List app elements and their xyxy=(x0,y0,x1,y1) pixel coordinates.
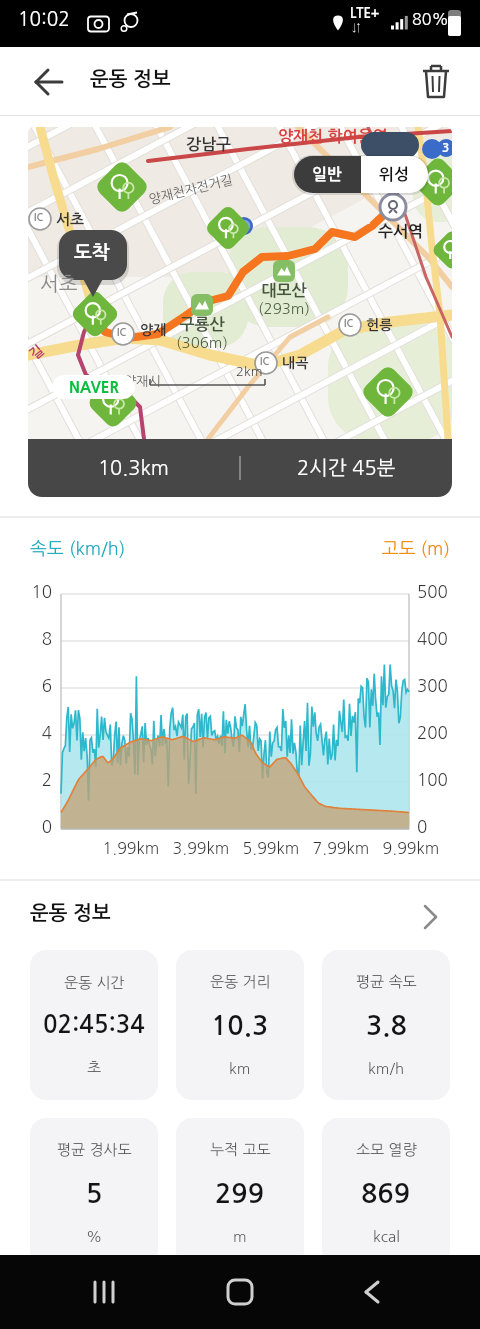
staticText: km xyxy=(229,1061,251,1076)
staticText: % xyxy=(86,1229,103,1244)
staticText: 소모 열량 xyxy=(356,1142,417,1157)
staticText: 8 xyxy=(0,630,52,647)
staticText: 7.99km xyxy=(306,840,376,856)
staticText: 3.8 xyxy=(366,1012,407,1039)
staticText: 고도 (m) xyxy=(330,540,450,558)
staticText: 양재천 학여울역 xyxy=(278,129,388,145)
staticText: (293m) xyxy=(254,301,314,316)
staticText: 0 xyxy=(417,818,428,835)
staticText: 9.99km xyxy=(376,840,446,856)
staticText: 300 xyxy=(417,677,448,694)
staticText: 200 xyxy=(417,724,448,741)
staticText: 위성 xyxy=(379,167,410,183)
staticText: 초 xyxy=(87,1060,102,1075)
staticText: 100 xyxy=(417,771,448,788)
staticText: 80% xyxy=(412,11,449,27)
staticText: km/h xyxy=(368,1061,405,1076)
staticText: 일반 xyxy=(312,167,343,183)
staticText: 10.3km xyxy=(98,458,169,478)
staticText: NAVER xyxy=(69,380,119,395)
staticText: 5.99km xyxy=(236,840,306,856)
staticText: 속도 (km/h) xyxy=(30,540,126,558)
staticText: 299 xyxy=(215,1180,265,1207)
staticText: 400 xyxy=(417,630,448,647)
staticText: 평균 경사도 xyxy=(57,1142,132,1157)
staticText: (306m) xyxy=(172,335,232,350)
staticText: ↓↑ xyxy=(352,23,361,32)
staticText: 수서역 xyxy=(378,224,424,240)
staticText: 운동 정보 xyxy=(90,69,171,89)
staticText: LTE+ xyxy=(350,7,380,20)
staticText: 운동 정보 xyxy=(30,903,111,923)
staticText: 3.99km xyxy=(166,840,236,856)
staticText: 서초 xyxy=(40,274,78,294)
staticText: 10:02 xyxy=(18,10,70,29)
staticText: 헌릉 xyxy=(366,318,393,332)
staticText: 3 xyxy=(442,142,450,154)
staticText: 10 xyxy=(0,583,52,600)
staticText: IC xyxy=(117,328,127,338)
staticText: 869 xyxy=(361,1180,411,1207)
staticText: 대모산 xyxy=(254,283,314,299)
staticText: 5 xyxy=(86,1180,103,1207)
staticText: IC xyxy=(344,319,354,329)
staticText: m xyxy=(233,1229,247,1244)
staticText: 2시간 45분 xyxy=(297,458,396,478)
staticText: 양재천자전거길 xyxy=(148,173,234,206)
staticText: 평균 속도 xyxy=(356,974,417,989)
staticText: 2 xyxy=(0,771,52,788)
staticText: 10.3 xyxy=(211,1012,269,1039)
staticText: 구룡산 xyxy=(172,317,232,333)
staticText: 2km xyxy=(236,365,263,378)
staticText: 도착 xyxy=(74,243,110,262)
staticText: 1.99km xyxy=(96,840,166,856)
staticText: 내곡 xyxy=(282,356,309,370)
staticText: 양재 xyxy=(140,323,167,337)
staticText: 길 xyxy=(28,342,47,362)
staticText: kcal xyxy=(373,1229,400,1244)
staticText: 6 xyxy=(0,677,52,694)
staticText: 0 xyxy=(0,818,52,835)
staticText: 02:45:34 xyxy=(43,1013,145,1037)
staticText: IC xyxy=(34,213,44,223)
staticText: 서초 xyxy=(56,212,85,227)
staticText: 운동 시간 xyxy=(64,975,125,990)
staticText: 양재시 xyxy=(124,375,161,388)
staticText: 누적 고도 xyxy=(210,1142,271,1157)
staticText: 500 xyxy=(417,583,448,600)
staticText: IC xyxy=(260,357,270,367)
staticText: 운동 거리 xyxy=(210,974,271,989)
staticText: 강남구 xyxy=(186,137,232,153)
staticText: 4 xyxy=(0,724,52,741)
